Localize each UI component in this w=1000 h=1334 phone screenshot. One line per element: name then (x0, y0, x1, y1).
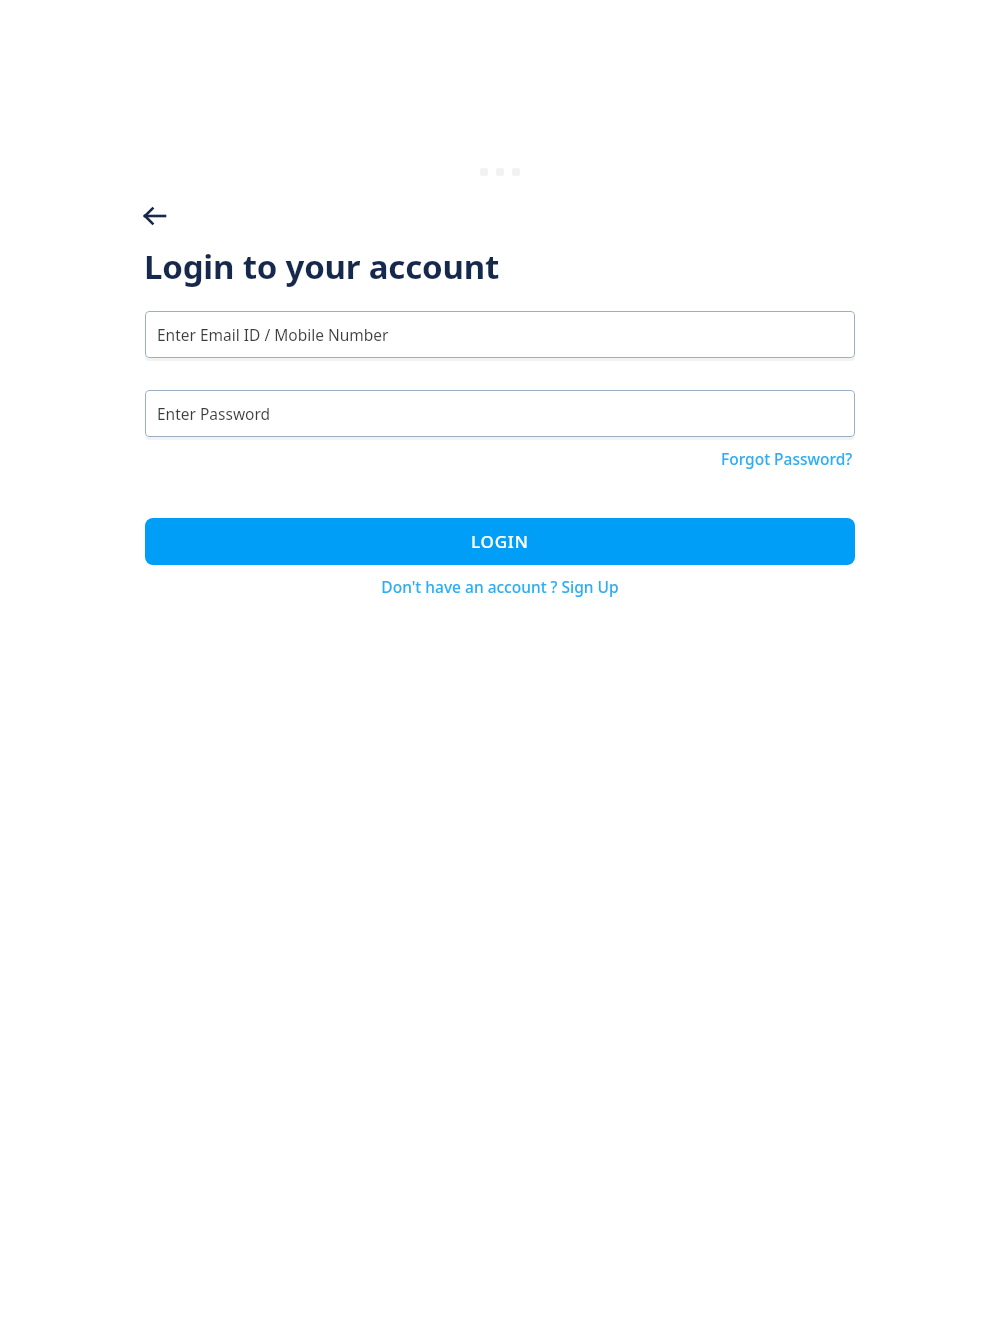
staticText: Don't have an account ? Sign Up (381, 576, 619, 597)
staticText: Enter Password (157, 403, 271, 424)
button[interactable]: LOGIN (145, 518, 855, 565)
staticText: Login to your account (144, 244, 500, 289)
button[interactable]: Forgot Password? (719, 446, 855, 471)
staticText: Enter Email ID / Mobile Number (157, 324, 389, 345)
staticText: Forgot Password? (721, 448, 853, 469)
button[interactable]: Back (142, 203, 172, 229)
button[interactable]: Don't have an account ? Sign Up (377, 574, 623, 599)
staticText: LOGIN (471, 530, 529, 553)
button[interactable]: Enter Password (145, 390, 855, 437)
button[interactable]: Enter Email ID / Mobile Number (145, 311, 855, 358)
